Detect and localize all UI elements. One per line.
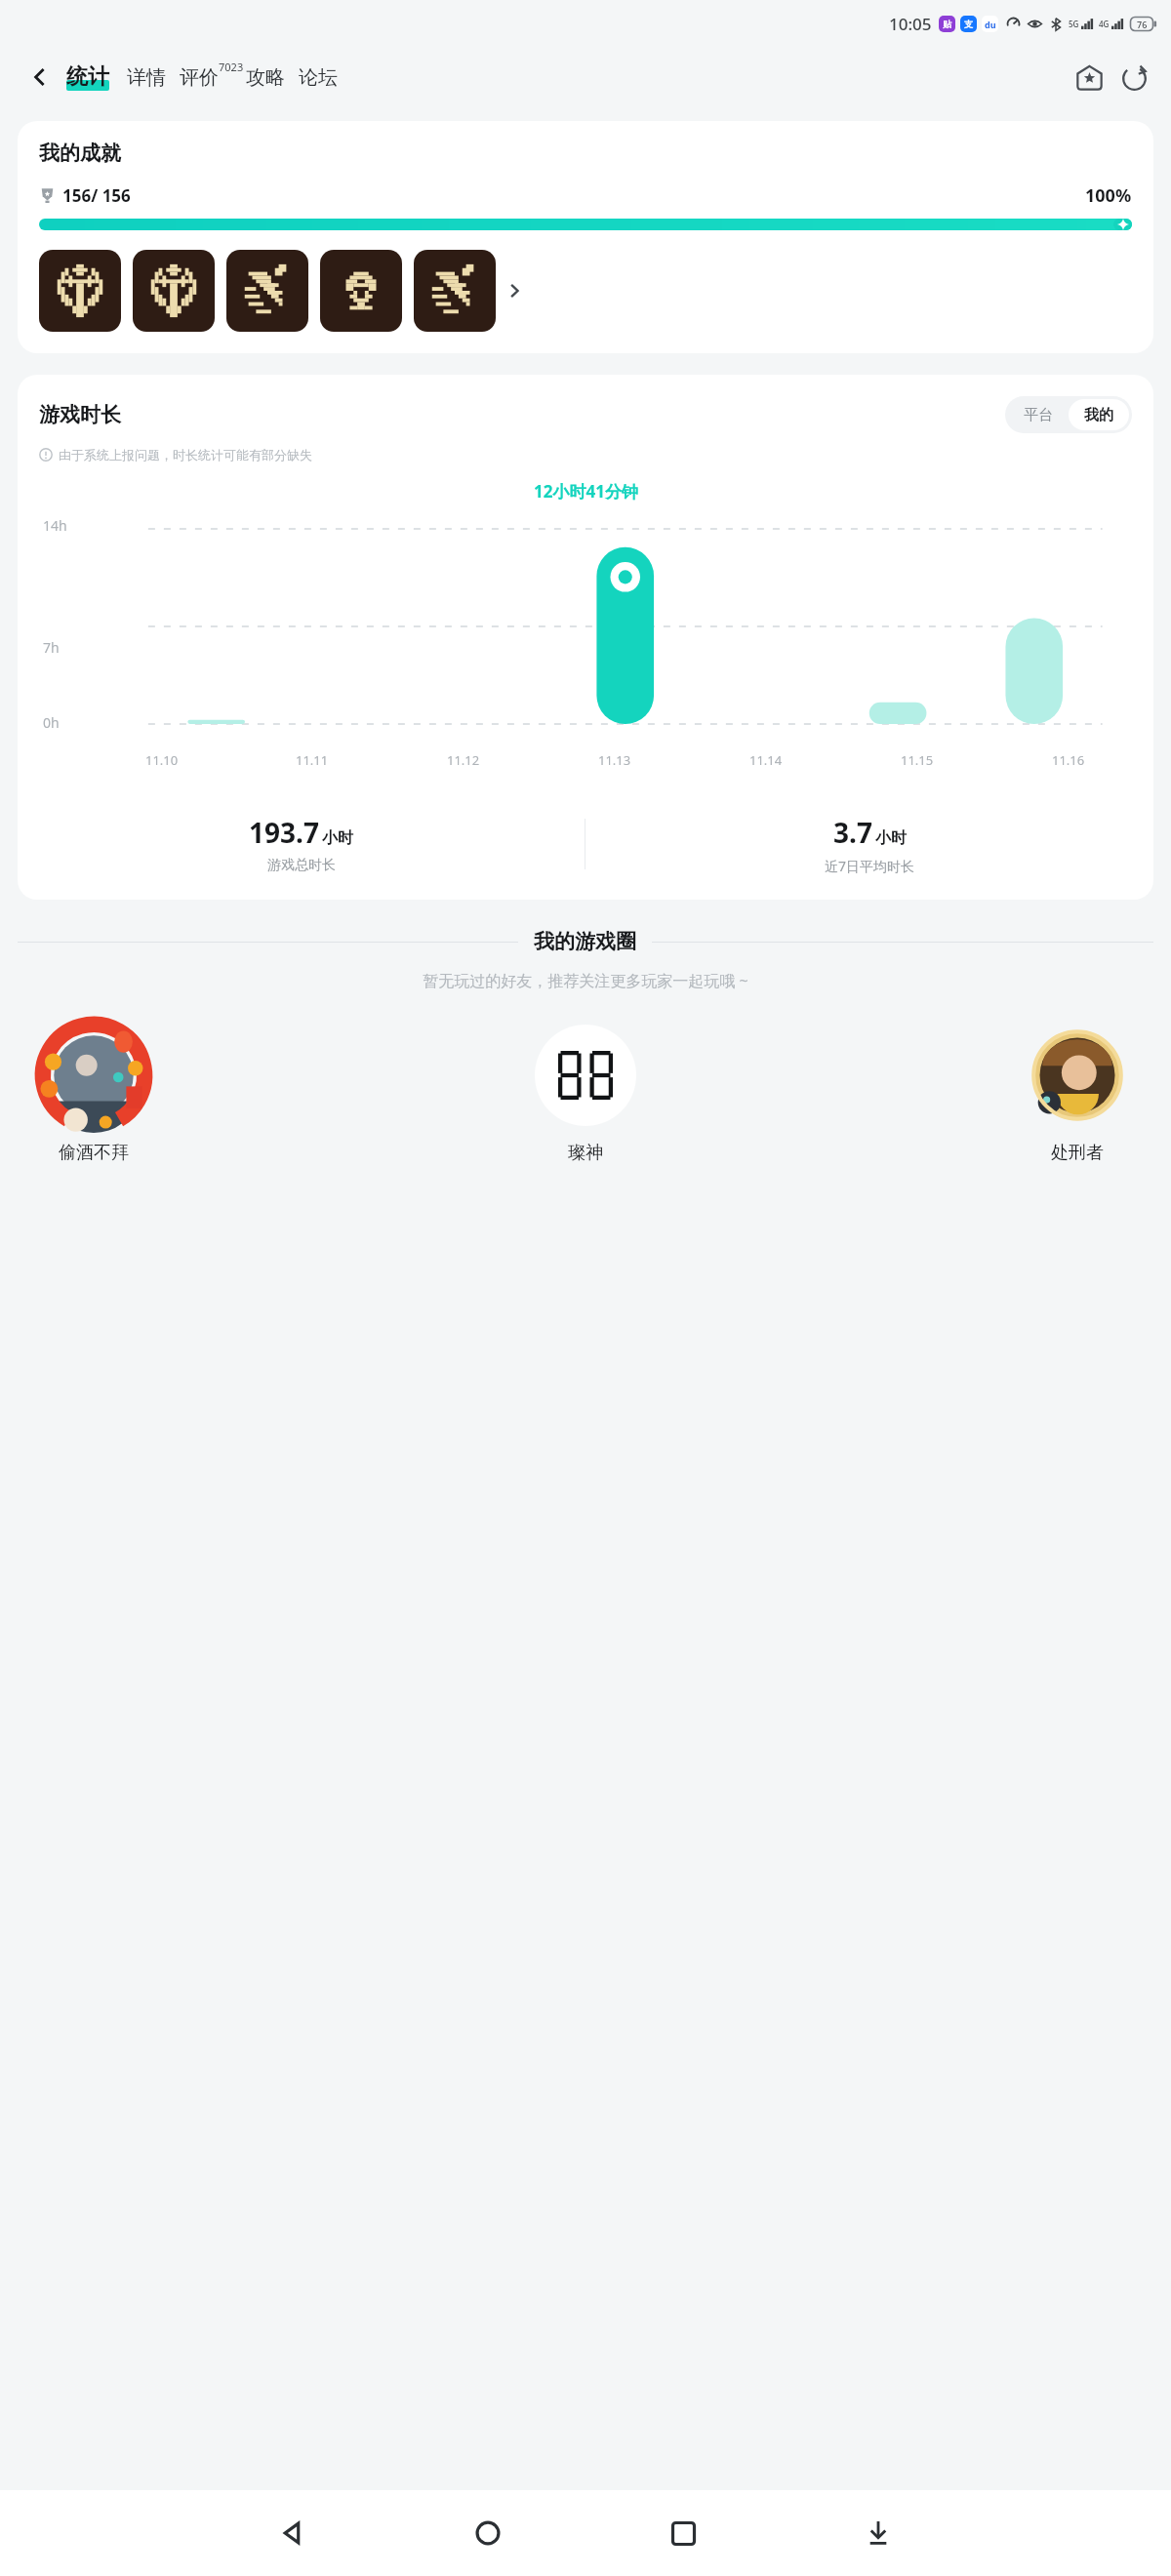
button[interactable]: Share [1114, 58, 1153, 97]
staticText: 攻略 [246, 65, 285, 90]
button[interactable]: 平台 [1008, 399, 1069, 430]
staticText: 11.14 [749, 751, 783, 769]
staticText: 评价 [180, 65, 219, 90]
button[interactable]: Achievement badge [133, 250, 215, 332]
staticText: 游戏总时长 [267, 857, 336, 874]
button[interactable]: Achievement badge [414, 250, 496, 332]
staticText: 193.7 [249, 814, 319, 851]
staticText: du [985, 19, 996, 30]
staticText: 11.13 [598, 751, 631, 769]
staticText: 贴 [943, 19, 951, 29]
button[interactable]: Achievement badge [320, 250, 402, 332]
staticText: 10:05 [889, 13, 932, 35]
button[interactable]: Achievement badge [226, 250, 308, 332]
staticText: 0h [43, 713, 60, 732]
staticText: 我的游戏圈 [534, 929, 636, 954]
button[interactable]: Recent apps [585, 2490, 781, 2576]
staticText: 处刑者 [1051, 1142, 1104, 1164]
staticText: 游戏时长 [39, 402, 121, 427]
button[interactable]: 处刑者 [1019, 1017, 1136, 1164]
staticText: 我的成就 [39, 141, 121, 166]
staticText: 11.15 [901, 751, 934, 769]
staticText: 100% [1085, 183, 1132, 208]
button[interactable]: 我的成就 [18, 121, 1153, 353]
staticText: 3.7 [833, 814, 872, 851]
button[interactable]: Back [21, 59, 59, 96]
staticText: 11.12 [447, 751, 480, 769]
button[interactable]: Achievement badge [39, 250, 121, 332]
staticText: 详情 [127, 65, 166, 90]
staticText: 7h [43, 638, 60, 657]
staticText: 论坛 [299, 65, 338, 90]
staticText: 4G [1099, 19, 1110, 29]
button[interactable]: Favorite [1070, 58, 1109, 97]
button[interactable]: Download [781, 2490, 976, 2576]
staticText: 76 [1137, 19, 1148, 30]
staticText: 11.16 [1052, 751, 1085, 769]
staticText: 近7日平均时长 [825, 857, 915, 875]
staticText: 我的 [1084, 406, 1113, 424]
button[interactable]: 评价 [180, 65, 244, 90]
button[interactable]: Home [390, 2490, 585, 2576]
button[interactable]: 偷酒不拜 [35, 1017, 152, 1164]
staticText: 156/ 156 [62, 184, 131, 207]
staticText: 5G [1069, 19, 1079, 29]
staticText: 暂无玩过的好友，推荐关注更多玩家一起玩哦 ~ [0, 970, 1171, 991]
staticText: 小时 [875, 828, 907, 848]
staticText: 支 [964, 19, 973, 29]
button[interactable]: More achievements [502, 250, 527, 332]
staticText: 小时 [322, 828, 353, 848]
button[interactable]: 璨神 [527, 1017, 644, 1164]
button[interactable]: 论坛 [299, 65, 338, 90]
staticText: 11.11 [296, 751, 329, 769]
staticText: 璨神 [568, 1142, 603, 1164]
button[interactable]: 我的 [1069, 399, 1129, 430]
staticText: 由于系统上报问题，时长统计可能有部分缺失 [59, 447, 312, 463]
staticText: 平台 [1024, 406, 1053, 424]
staticText: 偷酒不拜 [59, 1142, 129, 1164]
button[interactable]: 统计 [66, 63, 109, 91]
staticText: 14h [43, 516, 67, 535]
button[interactable]: 攻略 [246, 65, 285, 90]
staticText: 11.10 [145, 751, 179, 769]
staticText: 7023 [219, 60, 244, 74]
button[interactable]: Back [195, 2490, 390, 2576]
staticText: 12小时41分钟 [534, 480, 638, 503]
button[interactable]: 详情 [127, 65, 166, 90]
staticText: 统计 [66, 63, 109, 91]
